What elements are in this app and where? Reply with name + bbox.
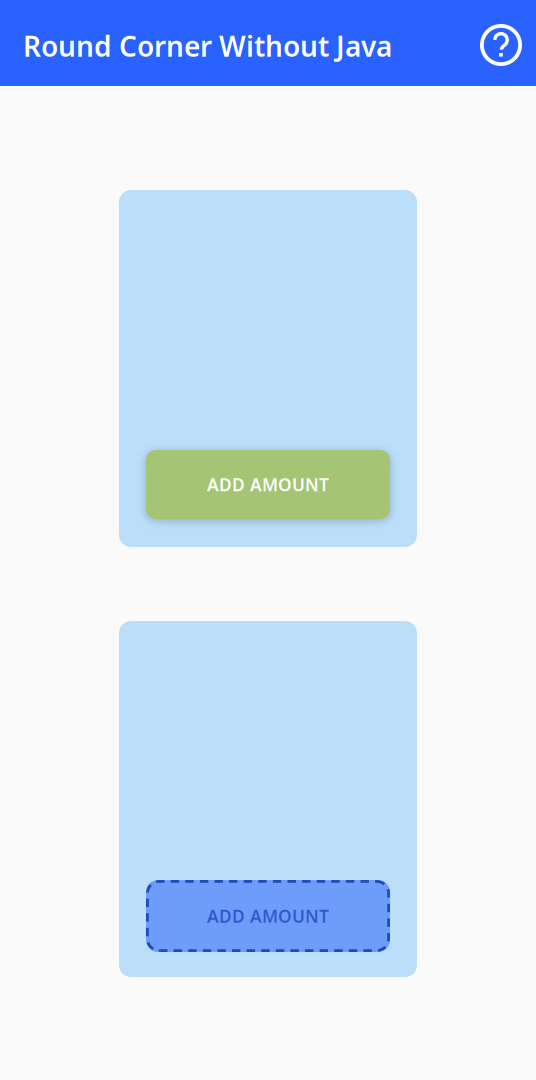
staticText: ADD AMOUNT [207,473,329,496]
button[interactable]: ADD AMOUNT [146,450,390,519]
button[interactable]: Help [473,15,529,71]
button[interactable]: ADD AMOUNT [146,880,390,952]
staticText: Round Corner Without Java [23,27,392,65]
staticText: ADD AMOUNT [207,904,329,927]
